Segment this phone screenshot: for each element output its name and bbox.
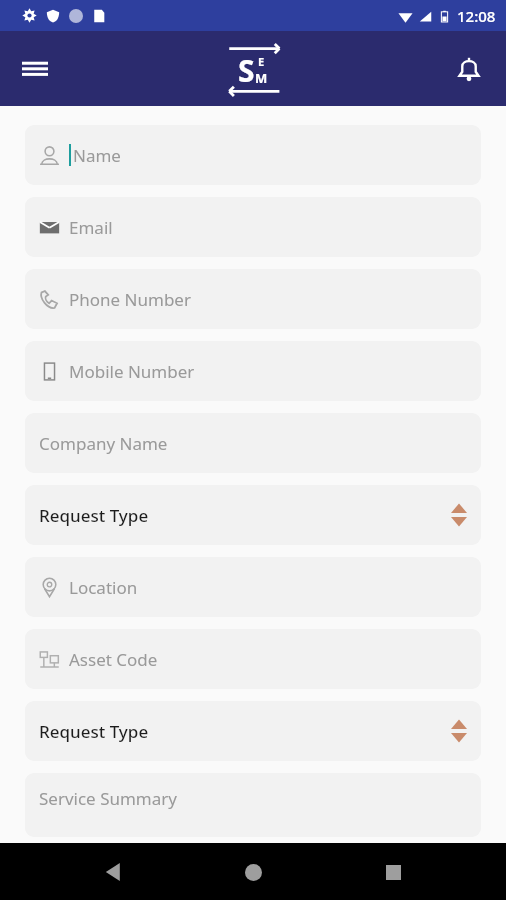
staticText: Email: [69, 216, 113, 239]
button[interactable]: Asset Code: [25, 629, 481, 689]
button[interactable]: Open navigation menu: [14, 48, 56, 90]
staticText: Name: [73, 144, 121, 167]
staticText: Service Summary: [39, 787, 177, 810]
staticText: Request Type: [39, 504, 149, 527]
staticText: M: [255, 69, 268, 87]
staticText: S: [238, 50, 255, 91]
button[interactable]: Company Name: [25, 413, 481, 473]
button[interactable]: Name: [25, 125, 481, 185]
button[interactable]: Notifications: [448, 48, 490, 90]
staticText: 12:08: [457, 6, 496, 26]
button[interactable]: Phone Number: [25, 269, 481, 329]
staticText: Asset Code: [69, 648, 158, 671]
button[interactable]: Mobile Number: [25, 341, 481, 401]
button[interactable]: Home: [226, 845, 280, 899]
staticText: Mobile Number: [69, 360, 195, 383]
button[interactable]: Email: [25, 197, 481, 257]
button[interactable]: Back: [86, 845, 140, 899]
staticText: Company Name: [39, 432, 168, 455]
staticText: Request Type: [39, 720, 149, 743]
staticText: Location: [69, 576, 138, 599]
staticText: Phone Number: [69, 288, 191, 311]
button[interactable]: Request Type: [25, 485, 481, 545]
button[interactable]: Service Summary: [25, 773, 481, 837]
staticText: E: [258, 54, 265, 69]
button[interactable]: Request Type: [25, 701, 481, 761]
button[interactable]: Recent apps: [366, 845, 420, 899]
button[interactable]: Location: [25, 557, 481, 617]
